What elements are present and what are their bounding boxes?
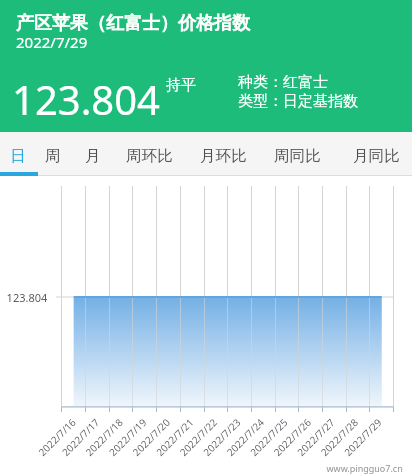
button[interactable]: 日 (0, 132, 37, 176)
button[interactable]: 周环比 (116, 132, 182, 176)
staticText: 2022/7/29 (16, 32, 88, 52)
staticText: 类型：日定基指数 (238, 92, 358, 111)
button[interactable]: 周同比 (264, 132, 330, 176)
staticText: 月同比 (353, 146, 400, 166)
staticText: 日 (10, 146, 26, 166)
staticText: 周环比 (126, 146, 173, 166)
button[interactable]: 周 (34, 132, 72, 176)
staticText: 123.804 (12, 72, 160, 126)
staticText: 月环比 (200, 146, 247, 166)
staticText: 产区苹果（红富士）价格指数 (16, 12, 250, 35)
button[interactable]: 月同比 (343, 132, 409, 176)
staticText: 周 (45, 146, 61, 166)
staticText: 种类：红富士 (238, 73, 328, 92)
staticText: 周同比 (274, 146, 321, 166)
staticText: 持平 (166, 76, 196, 95)
button[interactable]: 月 (74, 132, 112, 176)
staticText: 月 (85, 146, 101, 166)
button[interactable]: 月环比 (190, 132, 256, 176)
